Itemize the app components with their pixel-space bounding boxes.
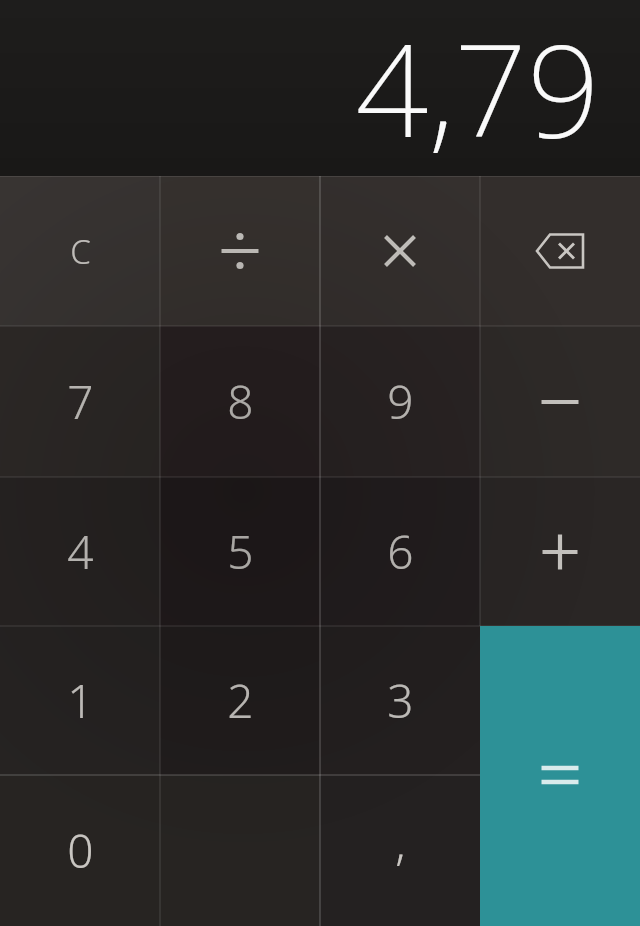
button[interactable]: 2 <box>160 626 320 775</box>
button[interactable]: 8 <box>160 326 320 477</box>
staticText: 7 <box>67 370 94 433</box>
button[interactable]: 4 <box>0 477 160 626</box>
staticText: , <box>395 811 406 874</box>
button[interactable]: 5 <box>160 477 320 626</box>
button[interactable]: 9 <box>320 326 480 477</box>
button[interactable]: Plus <box>480 477 640 626</box>
button[interactable]: Minus <box>480 326 640 477</box>
button[interactable]: Divide <box>160 176 320 326</box>
staticText: 4 <box>67 520 94 583</box>
button[interactable]: 0 <box>0 775 320 926</box>
staticText: 0 <box>67 819 94 882</box>
button[interactable]: 3 <box>320 626 480 775</box>
staticText: 1 <box>67 669 94 732</box>
button[interactable]: Equals <box>480 626 640 926</box>
staticText: 9 <box>387 370 414 433</box>
button[interactable]: 6 <box>320 477 480 626</box>
button[interactable]: Backspace <box>480 176 640 326</box>
button[interactable]: , <box>320 775 480 926</box>
staticText: 4,79 <box>355 0 600 162</box>
button[interactable]: 1 <box>0 626 160 775</box>
button[interactable]: Multiply <box>320 176 480 326</box>
staticText: C <box>70 229 91 274</box>
staticText: 2 <box>227 669 254 732</box>
staticText: 5 <box>227 520 254 583</box>
button[interactable]: 7 <box>0 326 160 477</box>
button[interactable]: C <box>0 176 160 326</box>
staticText: 3 <box>387 669 414 732</box>
staticText: 6 <box>387 520 414 583</box>
staticText: 8 <box>227 370 254 433</box>
